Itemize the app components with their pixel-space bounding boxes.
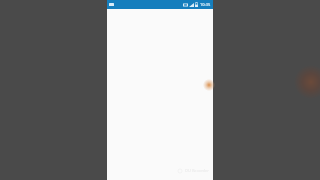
staticText: 10:35	[200, 2, 211, 7]
other: Signal strength	[189, 3, 194, 7]
other: Mobile data	[183, 3, 188, 7]
staticText: DU Recorder	[185, 168, 209, 173]
other: Battery	[195, 2, 198, 7]
other: Notification	[109, 3, 114, 6]
button[interactable]: Notification	[107, 0, 213, 9]
